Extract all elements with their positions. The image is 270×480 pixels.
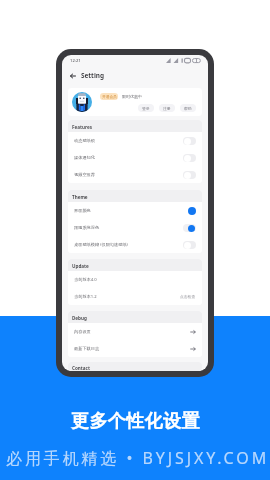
button[interactable]: 开通会员	[100, 93, 118, 100]
button[interactable]: 帮助	[180, 104, 196, 112]
button[interactable]	[183, 224, 196, 232]
staticText: 跟随系统深色	[74, 225, 100, 230]
button[interactable]: 跟随系统深色	[68, 219, 202, 236]
staticText: 内存设置	[74, 329, 91, 334]
staticText: Features	[72, 124, 93, 130]
staticText: 媒体通知化	[74, 155, 95, 160]
button[interactable]: 最新下载日志	[68, 340, 202, 357]
button[interactable]: 注册	[159, 104, 175, 112]
staticText: 视频空推荐	[74, 172, 95, 177]
button[interactable]	[183, 241, 196, 249]
button[interactable]: 当前版本4.0	[68, 271, 202, 288]
staticText: Setting	[81, 71, 104, 80]
staticText: 动态壁纸锁	[74, 138, 95, 143]
staticText: 必用手机精选 • BYJSJXY.COM	[6, 447, 270, 469]
staticText: 限时优惠中	[122, 94, 142, 99]
button[interactable]: 内存设置	[68, 323, 202, 340]
button[interactable]: 视频空推荐	[68, 166, 202, 183]
staticText: 注册	[163, 106, 171, 111]
button[interactable]: 开通会员	[68, 88, 202, 116]
staticText: 帮助	[184, 106, 192, 111]
staticText: 点击检查	[180, 294, 196, 299]
button[interactable]: 动态壁纸锁	[68, 132, 202, 149]
staticText: 12:21	[70, 58, 81, 64]
button[interactable]: 当前版本1.2	[68, 288, 202, 305]
button[interactable]	[183, 137, 196, 145]
button[interactable]	[183, 154, 196, 162]
staticText: Theme	[72, 194, 88, 200]
staticText: 当前版本4.0	[74, 277, 97, 283]
staticText: 当前版本1.2	[74, 294, 97, 300]
staticText: Update	[72, 263, 89, 269]
button[interactable]: Back	[67, 70, 78, 81]
button[interactable]: 媒体通知化	[68, 149, 202, 166]
staticText: Contact	[72, 365, 90, 371]
staticText: 开通会员	[102, 94, 117, 99]
staticText: 界面颜色	[74, 208, 91, 213]
button[interactable]	[183, 171, 196, 179]
button[interactable]: 界面颜色	[68, 202, 202, 219]
staticText: Debug	[72, 315, 87, 321]
staticText: 更多个性化设置	[71, 410, 200, 433]
staticText: 桌面壁纸模糊 (仅限匀速壁纸)	[74, 242, 128, 248]
button[interactable]: 桌面壁纸模糊 (仅限匀速壁纸)	[68, 236, 202, 253]
staticText: 最新下载日志	[74, 346, 100, 351]
button[interactable]	[188, 207, 196, 215]
staticText: 登录	[142, 106, 150, 111]
button[interactable]: 登录	[138, 104, 154, 112]
